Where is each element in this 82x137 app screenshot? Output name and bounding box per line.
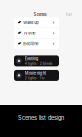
- staticText: Edit: [66, 12, 72, 17]
- button[interactable]: Bed time: [14, 39, 59, 49]
- button[interactable]: Movie night: [14, 70, 59, 81]
- staticText: 2 lights · 1 tv: [25, 76, 45, 80]
- button[interactable]: Tv time: [14, 28, 59, 38]
- staticText: Bed time: [23, 41, 38, 46]
- staticText: Evening: [25, 56, 39, 61]
- button[interactable]: Edit: [66, 12, 72, 17]
- button[interactable]: Wake up: [14, 17, 59, 28]
- staticText: Movie night: [25, 71, 46, 76]
- button[interactable]: Evening: [14, 55, 59, 66]
- staticText: Tv time: [23, 31, 35, 36]
- staticText: Wake up: [23, 20, 38, 25]
- staticText: Scenes list design: [18, 114, 64, 121]
- staticText: Scenes: [33, 12, 46, 17]
- staticText: 4 lights · 2 blinds: [25, 61, 53, 66]
